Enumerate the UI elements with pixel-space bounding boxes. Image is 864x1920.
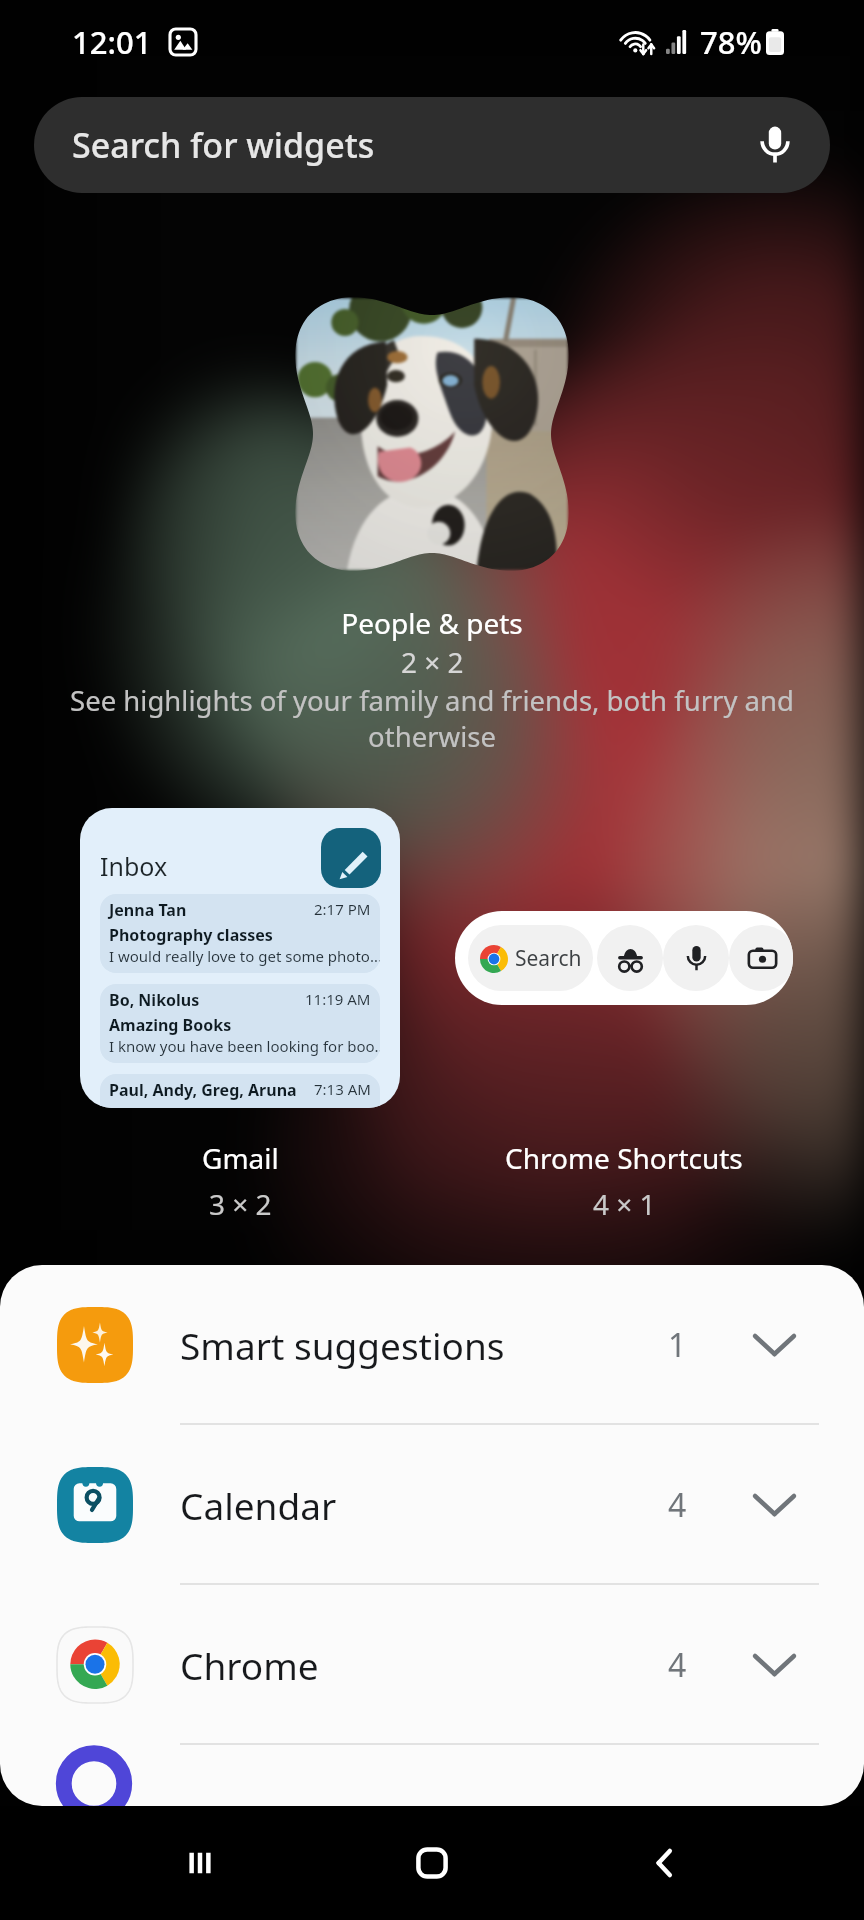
button[interactable]: Voice search [663, 925, 729, 991]
staticText: Search [515, 944, 582, 973]
button[interactable]: Home [399, 1830, 465, 1896]
button[interactable]: Search [468, 925, 593, 991]
staticText: Inbox [100, 849, 168, 883]
staticText: Amazing Books [109, 1014, 232, 1036]
button[interactable]: Incognito search [597, 925, 663, 991]
staticText: 4 [668, 1483, 687, 1527]
staticText: Jenna Tan [109, 899, 187, 921]
button[interactable]: Expand Calendar [740, 1477, 808, 1533]
staticText: Chrome [180, 1640, 319, 1690]
button[interactable]: Expand Chrome [740, 1637, 808, 1693]
button[interactable]: Google Lens [729, 925, 793, 991]
staticText: Photography classes [109, 924, 273, 946]
button[interactable]: Voice search [752, 122, 798, 168]
staticText: See highlights of your family and friend… [70, 682, 794, 755]
staticText: 11:19 AM [305, 989, 371, 1009]
staticText: People & pets [341, 604, 523, 642]
staticText: Paul, Andy, Greg, Aruna [109, 1079, 297, 1101]
staticText: 3 × 2 [209, 1185, 272, 1223]
button[interactable]: Calendar [0, 1425, 864, 1585]
staticText: Search for widgets [72, 122, 375, 168]
button[interactable]: Back [632, 1830, 698, 1896]
button[interactable]: Search for widgets [34, 97, 830, 193]
button[interactable]: Inbox [80, 808, 400, 1108]
button[interactable]: Paul, Andy, Greg, Aruna [100, 1074, 380, 1108]
button[interactable]: Bo, Nikolus [100, 984, 380, 1063]
button[interactable]: Compose [321, 828, 381, 888]
staticText: Smart suggestions [180, 1320, 505, 1370]
staticText: 2:17 PM [314, 899, 371, 919]
button[interactable]: Smart suggestions [0, 1265, 864, 1425]
staticText: 4 × 1 [593, 1185, 656, 1223]
staticText: I would really love to get some photog… [109, 946, 380, 966]
staticText: 12:01 [72, 21, 152, 63]
staticText: Chrome Shortcuts [505, 1139, 743, 1177]
staticText: Bo, Nikolus [109, 989, 200, 1011]
button[interactable]: Recent apps [167, 1830, 233, 1896]
staticText: Gmail [202, 1139, 279, 1177]
staticText: I know you have been looking for boo… [109, 1036, 380, 1056]
staticText: 7:13 AM [314, 1079, 371, 1099]
staticText: 78% [700, 21, 762, 63]
button[interactable]: People & pets widget preview [296, 298, 568, 570]
staticText: 1 [668, 1323, 687, 1367]
staticText: Calendar [180, 1480, 337, 1530]
button[interactable]: Chrome [0, 1585, 864, 1745]
button[interactable]: Search [455, 911, 793, 1005]
staticText: 4 [668, 1643, 687, 1687]
button[interactable]: Expand Smart suggestions [740, 1317, 808, 1373]
staticText: 2 × 2 [401, 643, 464, 681]
button[interactable]: Jenna Tan [100, 894, 380, 973]
